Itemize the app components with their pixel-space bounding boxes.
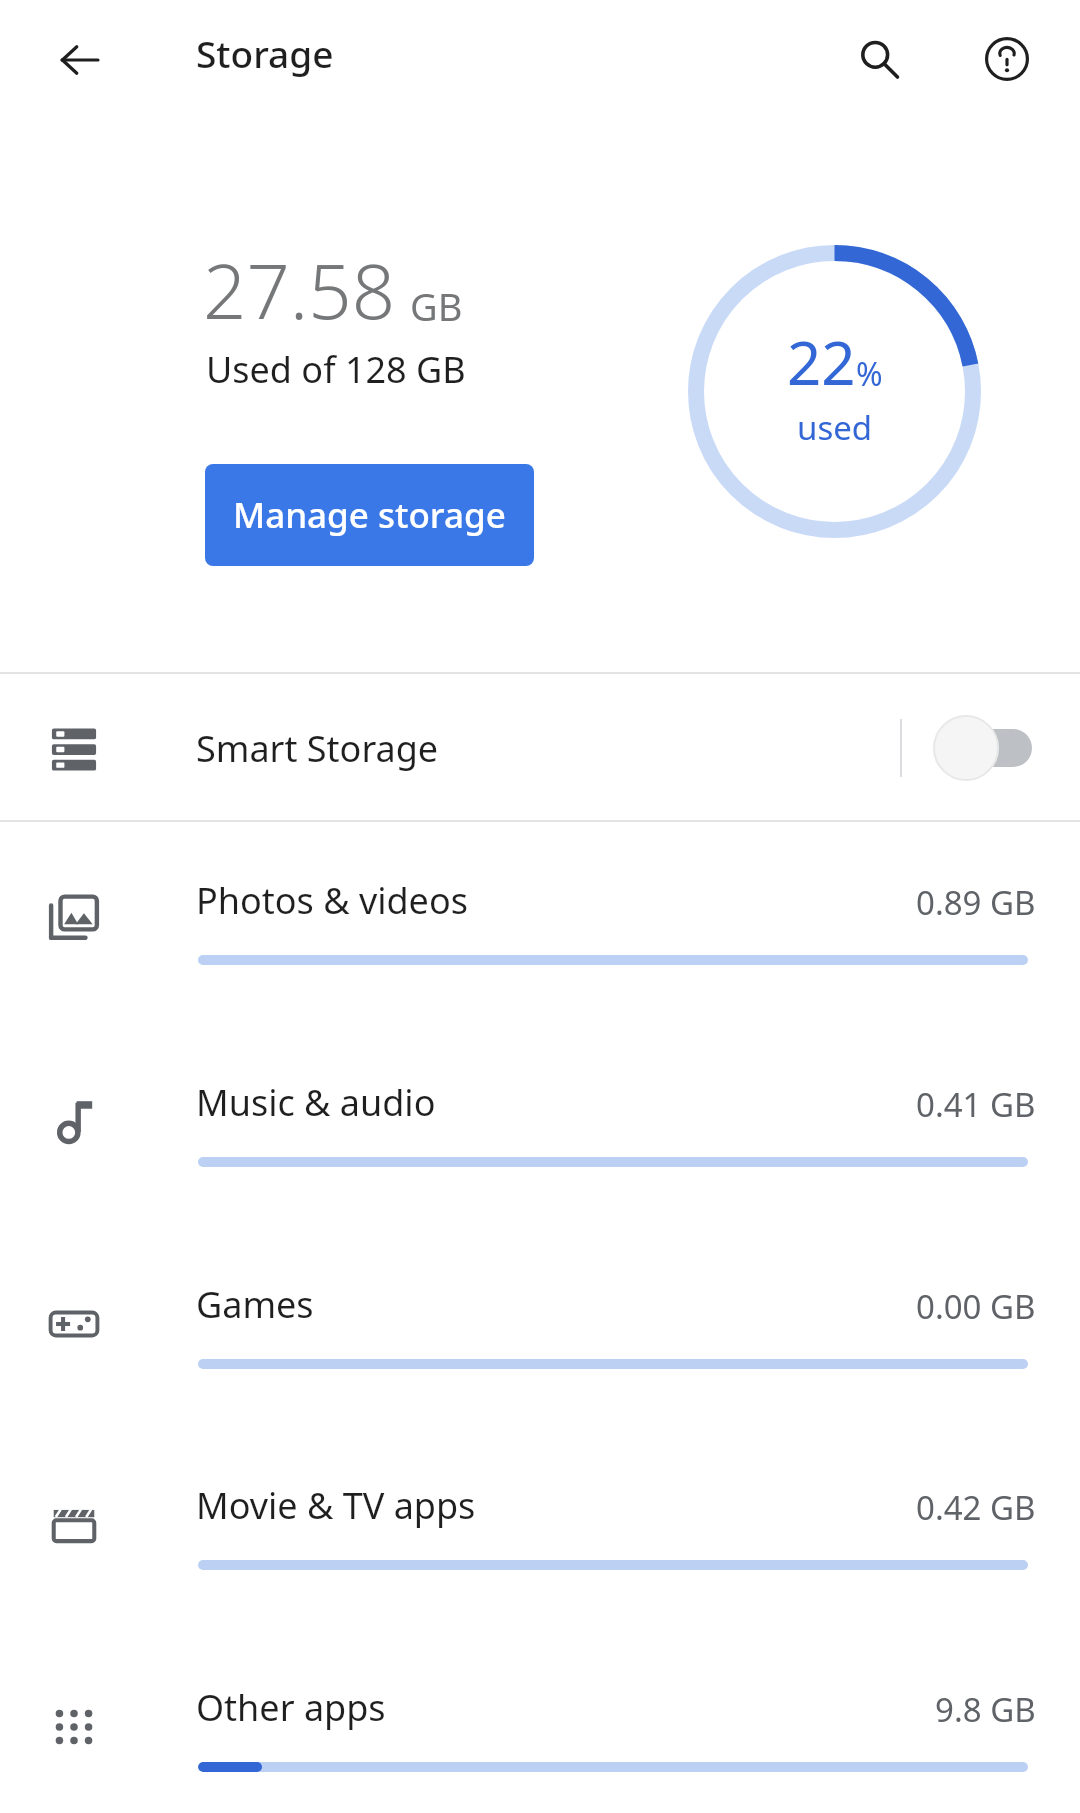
staticText: 27.58 xyxy=(203,238,396,342)
staticText: Movie & TV apps xyxy=(196,1481,476,1530)
staticText: used xyxy=(797,405,873,450)
button[interactable]: Search xyxy=(840,20,918,98)
button[interactable]: Games xyxy=(0,1226,1080,1428)
staticText: Used of 128 GB xyxy=(206,345,466,394)
button[interactable]: Smart Storage xyxy=(0,674,1080,822)
button[interactable]: Music & audio xyxy=(0,1024,1080,1226)
staticText: Photos & videos xyxy=(196,876,468,925)
staticText: Games xyxy=(196,1280,314,1329)
button[interactable]: Other apps xyxy=(0,1629,1080,1813)
staticText: Storage xyxy=(196,28,334,78)
staticText: 0.00 GB xyxy=(916,1284,1036,1329)
button[interactable]: Help xyxy=(968,20,1046,98)
staticText: 22 xyxy=(787,321,856,403)
button[interactable]: Movie & TV apps xyxy=(0,1427,1080,1629)
button[interactable]: Photos & videos xyxy=(0,822,1080,1024)
staticText: GB xyxy=(410,280,463,332)
staticText: 9.8 GB xyxy=(935,1687,1036,1732)
staticText: Music & audio xyxy=(196,1078,436,1127)
staticText: 0.41 GB xyxy=(916,1082,1036,1127)
staticText: 0.89 GB xyxy=(916,880,1036,925)
button[interactable]: Manage storage xyxy=(205,464,534,566)
staticText: Smart Storage xyxy=(196,724,439,773)
staticText: 0.42 GB xyxy=(916,1485,1036,1530)
staticText: % xyxy=(856,352,883,396)
button[interactable]: Smart Storage switch xyxy=(910,700,1040,796)
button[interactable]: Back xyxy=(42,22,118,98)
staticText: Manage storage xyxy=(233,491,506,539)
staticText: Other apps xyxy=(196,1683,386,1732)
